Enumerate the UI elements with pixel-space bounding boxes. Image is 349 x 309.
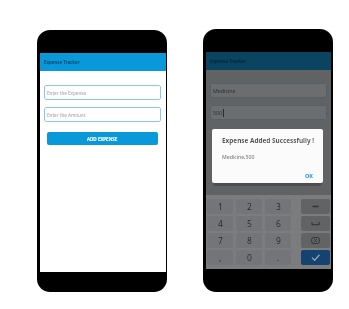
button[interactable]: [301, 250, 330, 265]
button[interactable]: 3: [265, 199, 291, 214]
button[interactable]: 0: [236, 250, 262, 265]
staticText: 8: [247, 235, 252, 247]
staticText: Expense Tracker: [210, 58, 246, 64]
button[interactable]: ADD EXPENSE: [47, 132, 158, 145]
staticText: Medicine: [213, 87, 236, 94]
staticText: 5: [247, 218, 252, 230]
button[interactable]: 4: [207, 216, 233, 231]
staticText: 4: [218, 218, 223, 230]
staticText: Expense Tracker: [44, 59, 80, 65]
staticText: .: [277, 252, 280, 264]
staticText: Enter the Expense: [47, 90, 87, 96]
staticText: 7: [218, 235, 223, 247]
button[interactable]: 8: [236, 233, 262, 248]
button[interactable]: [301, 199, 330, 214]
button[interactable]: Enter the Expense: [44, 85, 161, 100]
staticText: 0: [247, 252, 252, 264]
button[interactable]: 500: [210, 105, 327, 120]
button[interactable]: 7: [207, 233, 233, 248]
staticText: Expense Added Successfully !: [222, 136, 315, 145]
button[interactable]: 2: [236, 199, 262, 214]
button[interactable]: 5: [236, 216, 262, 231]
button[interactable]: [301, 233, 330, 248]
button[interactable]: Medicine: [210, 83, 327, 98]
staticText: 3: [276, 201, 281, 213]
staticText: ADD EXPENSE: [87, 136, 118, 142]
button[interactable]: OK: [305, 172, 314, 179]
staticText: Medicine,500: [222, 153, 255, 160]
staticText: 1: [218, 201, 223, 213]
button[interactable]: 9: [265, 233, 291, 248]
button[interactable]: Enter the Amount: [44, 107, 161, 122]
staticText: OK: [305, 172, 314, 179]
staticText: 500: [213, 109, 223, 116]
staticText: 2: [247, 201, 252, 213]
button[interactable]: 6: [265, 216, 291, 231]
button[interactable]: [301, 216, 330, 231]
staticText: 6: [276, 218, 281, 230]
staticText: ,: [219, 252, 222, 264]
staticText: Enter the Amount: [47, 112, 86, 118]
staticText: 9: [276, 235, 281, 247]
button[interactable]: 1: [207, 199, 233, 214]
